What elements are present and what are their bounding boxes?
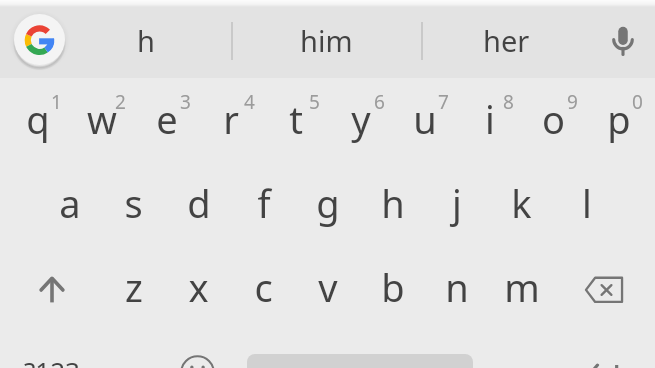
staticText: 4 [244,89,255,115]
button[interactable]: f [231,161,296,245]
button[interactable]: z [101,245,166,329]
staticText: 7 [438,89,449,115]
button[interactable]: i [457,77,522,161]
staticText: x [188,261,209,313]
staticText: h [137,21,155,60]
staticText: ?123 [24,353,80,368]
staticText: k [511,177,532,229]
staticText: 5 [309,89,320,115]
button[interactable]: him [244,1,408,79]
button[interactable]: p [586,77,651,161]
staticText: s [124,177,143,229]
staticText: 6 [374,89,385,115]
button[interactable]: h [70,1,222,79]
button[interactable]: r [198,77,263,161]
staticText: e [156,93,178,145]
staticText: t [289,93,303,145]
staticText: l [582,177,592,229]
staticText: him [300,21,353,60]
staticText: p [607,93,631,145]
button[interactable]: e [134,77,199,161]
staticText: 1 [51,89,62,115]
staticText: her [483,21,530,60]
button[interactable]: Google search [14,14,65,65]
button[interactable]: y [328,77,393,161]
button[interactable]: j [424,161,489,245]
staticText: 8 [503,89,514,115]
staticText: c [254,261,273,313]
button[interactable]: l [554,161,619,245]
button[interactable]: x [166,245,231,329]
button[interactable]: o [521,77,586,161]
button[interactable]: Shift [19,247,84,331]
staticText: h [381,177,405,229]
staticText: r [223,93,239,145]
button[interactable]: Emoji [165,330,230,368]
staticText: o [542,93,565,145]
staticText: 2 [115,89,126,115]
staticText: f [257,177,271,229]
button[interactable]: t [263,77,328,161]
button[interactable]: ?123 [19,328,84,368]
staticText: j [452,177,462,229]
button[interactable]: n [424,245,489,329]
staticText: 0 [632,89,643,115]
button[interactable]: h [360,161,425,245]
button[interactable]: g [295,161,360,245]
staticText: b [381,261,405,313]
button[interactable]: Backspace [571,247,636,331]
button[interactable]: m [489,245,554,329]
staticText: n [445,261,469,313]
staticText: u [413,93,437,145]
button[interactable]: b [360,245,425,329]
button[interactable]: Voice input [596,13,649,66]
staticText: z [125,261,143,313]
staticText: a [59,177,81,229]
button[interactable]: Enter [571,331,636,368]
button[interactable]: w [69,77,134,161]
button[interactable]: k [489,161,554,245]
staticText: y [351,93,371,145]
staticText: g [316,177,340,229]
button[interactable]: q [5,77,70,161]
button[interactable]: s [101,161,166,245]
staticText: v [318,261,338,313]
staticText: i [485,93,495,145]
staticText: 9 [567,89,578,115]
button[interactable]: her [433,1,579,79]
button[interactable]: a [37,161,102,245]
staticText: d [187,177,211,229]
button[interactable]: u [392,77,457,161]
button[interactable]: c [231,245,296,329]
staticText: w [87,93,117,145]
button[interactable]: v [295,245,360,329]
staticText: m [504,261,540,313]
button[interactable]: d [166,161,231,245]
staticText: 3 [180,89,191,115]
staticText: q [26,93,50,145]
